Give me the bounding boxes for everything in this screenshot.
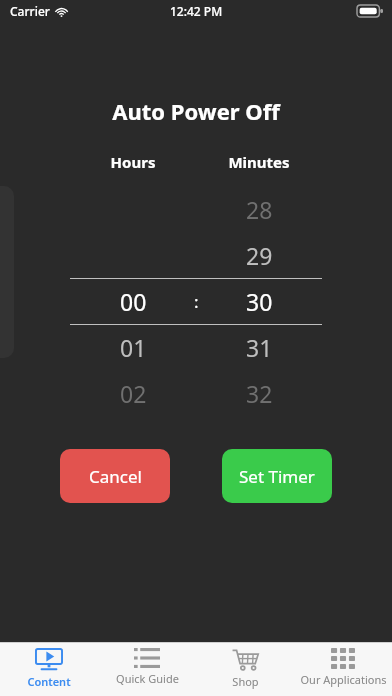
button[interactable]: Content [0,643,98,696]
staticText: Our Applications [300,672,387,687]
staticText: Set Timer [239,465,315,488]
button[interactable]: Set Timer [222,449,332,503]
staticText: 32 [246,378,273,409]
staticText: Shop [232,674,259,689]
staticText: 12:42 PM [170,3,223,19]
staticText: 30 [246,286,273,317]
staticText: Content [27,674,71,689]
staticText: 02 [120,378,147,409]
button[interactable]: Minutes picker [196,186,322,416]
button[interactable]: Hours picker [70,186,196,416]
staticText: 00 [120,286,147,317]
staticText: 28 [246,194,273,225]
staticText: 31 [246,332,273,363]
staticText: 01 [120,332,147,363]
button[interactable]: Cancel [60,449,170,503]
button[interactable]: Our Applications [294,643,392,696]
staticText: Hours [70,152,196,172]
staticText: Cancel [89,465,142,488]
staticText: : [194,290,199,313]
staticText: Auto Power Off [0,96,392,126]
button[interactable]: Shop [196,643,294,696]
staticText: Quick Guide [116,671,179,686]
staticText: Carrier [10,3,50,19]
button[interactable]: Quick Guide [98,643,196,696]
staticText: Minutes [196,152,322,172]
staticText: 29 [246,240,273,271]
